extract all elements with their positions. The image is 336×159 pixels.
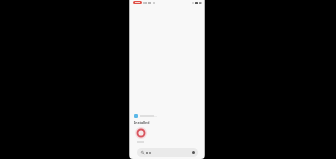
button[interactable]	[137, 148, 198, 157]
staticText: Installed	[134, 120, 150, 125]
button[interactable]: App	[136, 128, 146, 138]
button[interactable]: Suggested app	[134, 113, 158, 119]
button[interactable]: Screen recording active	[133, 1, 142, 4]
